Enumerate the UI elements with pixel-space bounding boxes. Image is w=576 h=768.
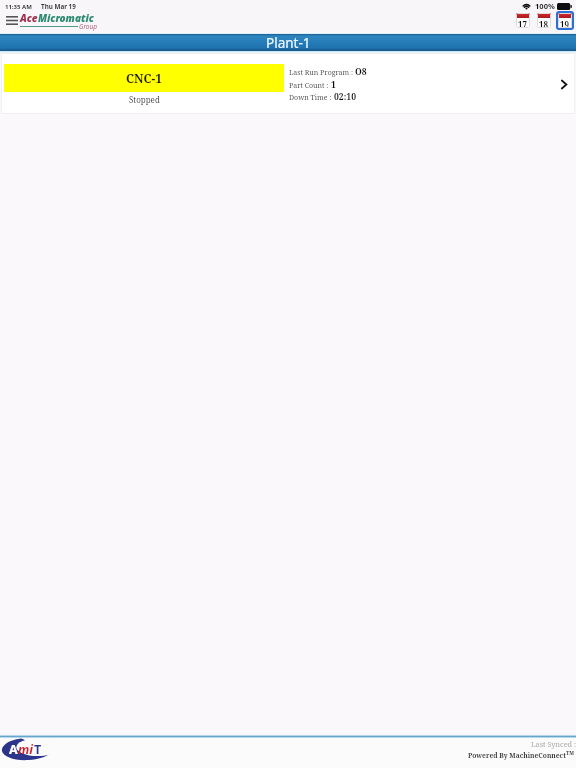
- staticText: Plant-1: [266, 34, 311, 51]
- staticText: 1: [331, 79, 336, 91]
- staticText: TM: [566, 750, 575, 757]
- staticText: Group: [79, 22, 98, 31]
- staticText: 18: [539, 19, 549, 28]
- staticText: Thu Mar 19: [41, 2, 76, 11]
- staticText: Part Count :: [289, 81, 331, 91]
- staticText: Powered By MachineConnect: [468, 751, 566, 760]
- staticText: Micromatic: [38, 11, 94, 25]
- staticText: 02:10: [334, 91, 357, 103]
- button[interactable]: Day 19: [558, 13, 572, 28]
- staticText: CNC-1: [126, 70, 163, 86]
- button[interactable]: CNC-1: [1, 53, 575, 114]
- staticText: Last Synced :: [531, 739, 576, 749]
- staticText: 100%: [535, 1, 555, 11]
- staticText: A: [9, 741, 18, 758]
- staticText: Down Time :: [289, 93, 334, 103]
- staticText: Ace: [20, 11, 38, 25]
- staticText: O8: [355, 66, 367, 78]
- staticText: Last Run Program :: [289, 68, 355, 78]
- staticText: 19: [560, 19, 570, 28]
- staticText: T: [34, 741, 42, 758]
- staticText: mi: [18, 741, 34, 758]
- staticText: 17: [518, 19, 528, 28]
- staticText: 11:35 AM: [5, 3, 32, 11]
- button[interactable]: Open machine details: [553, 70, 575, 98]
- staticText: Stopped: [129, 94, 160, 105]
- button[interactable]: Day 18: [537, 13, 551, 28]
- button[interactable]: Menu: [2, 13, 22, 28]
- button[interactable]: Day 17: [516, 13, 530, 28]
